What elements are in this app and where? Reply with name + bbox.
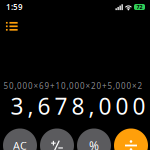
button[interactable]: %	[77, 128, 111, 150]
button[interactable]: Divide	[114, 128, 148, 150]
staticText: 50,000×69+10,000×20+5,000×2	[3, 81, 142, 91]
staticText: 1:59	[6, 2, 23, 12]
button[interactable]: History	[1, 17, 23, 36]
button[interactable]: Plus minus	[40, 128, 74, 150]
staticText: %	[89, 137, 99, 150]
staticText: 3,678,000	[10, 91, 145, 121]
staticText: 72	[136, 3, 142, 11]
staticText: AC	[13, 138, 27, 150]
button[interactable]: AC	[3, 128, 37, 150]
